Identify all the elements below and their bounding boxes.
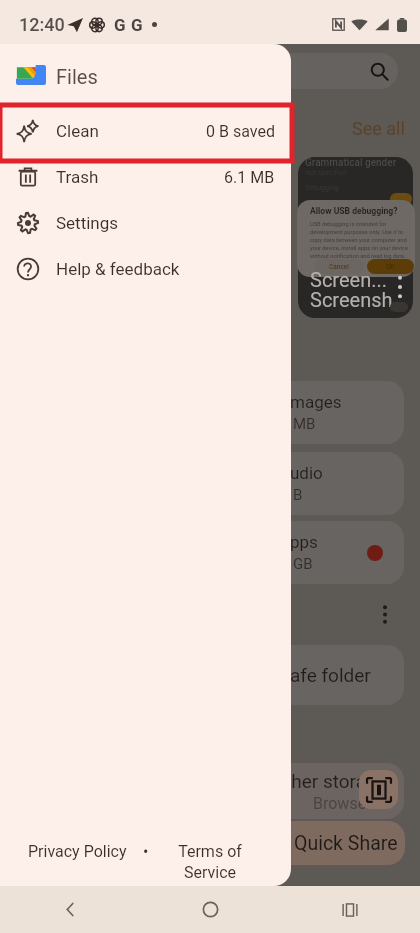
button[interactable]: afe folder (230, 645, 404, 705)
button[interactable]: See all (352, 118, 405, 139)
staticText: Allow USB debugging? (310, 206, 398, 216)
button[interactable]: Recent apps (280, 886, 420, 933)
staticText: Screen... Screensh... (310, 268, 409, 312)
staticText: udio (290, 463, 323, 483)
staticText: afe folder (290, 664, 371, 686)
staticText: ther stora (285, 770, 366, 792)
staticText: B (293, 486, 303, 504)
staticText: Cancel (329, 263, 349, 271)
button[interactable]: mages (230, 381, 404, 444)
staticText: Files (56, 65, 98, 88)
button[interactable]: Back (0, 886, 140, 933)
staticText: 6.1 MB (224, 168, 275, 187)
button[interactable]: Help & feedback (0, 246, 291, 292)
staticText: GB (293, 555, 313, 573)
staticText: 12:40 (19, 14, 65, 35)
staticText: Settings (56, 213, 119, 233)
staticText: USB debugging is intended for developmen… (310, 221, 411, 260)
button[interactable]: Privacy Policy (28, 842, 127, 861)
staticText: G (114, 15, 126, 35)
staticText: G (131, 15, 143, 35)
staticText: OK (386, 263, 395, 271)
staticText: Not specified (305, 169, 347, 177)
button[interactable]: pps (230, 521, 404, 584)
staticText: Grammatical gender (305, 157, 397, 169)
staticText: USB debugging (305, 201, 374, 213)
staticText: MB (293, 415, 316, 433)
button[interactable]: Terms of Service (171, 842, 249, 882)
button[interactable]: Home (140, 886, 280, 933)
staticText: See all (352, 118, 405, 139)
staticText: mages (290, 392, 342, 412)
staticText: Clean (56, 121, 99, 141)
button[interactable]: Search (40, 53, 398, 89)
button[interactable]: Quick Share (240, 821, 405, 865)
button[interactable]: Scan QR code (359, 770, 398, 809)
button[interactable]: udio (230, 452, 404, 515)
button[interactable]: ther stora (230, 763, 404, 819)
staticText: • (143, 842, 149, 861)
staticText: Trash (56, 167, 99, 187)
staticText: Debugging (305, 184, 339, 192)
button[interactable]: Clean (0, 108, 291, 154)
staticText: Browse c (313, 794, 379, 813)
staticText: Quick Share (294, 832, 398, 855)
button[interactable]: Trash (0, 154, 291, 200)
button[interactable]: Settings (0, 200, 291, 246)
staticText: pps (290, 532, 318, 552)
staticText: Help & feedback (56, 259, 180, 279)
staticText: 0 B saved (206, 122, 275, 141)
